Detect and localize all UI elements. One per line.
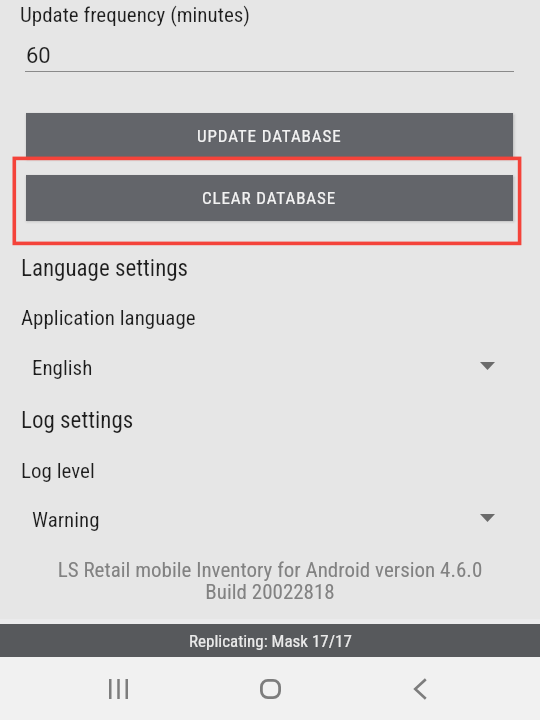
- staticText: UPDATE DATABASE: [197, 126, 342, 146]
- staticText: English: [32, 356, 93, 381]
- staticText: Language settings: [21, 255, 189, 282]
- staticText: LS Retail mobile Inventory for Android v…: [0, 558, 540, 605]
- button[interactable]: Recent apps: [78, 657, 158, 720]
- staticText: Log settings: [21, 407, 134, 434]
- button[interactable]: CLEAR DATABASE: [26, 175, 513, 221]
- button[interactable]: UPDATE DATABASE: [26, 113, 513, 159]
- button[interactable]: Warning: [0, 506, 540, 538]
- staticText: Replicating: Mask 17/17: [189, 631, 352, 651]
- staticText: Warning: [32, 508, 100, 533]
- button[interactable]: Home: [230, 657, 310, 720]
- staticText: CLEAR DATABASE: [202, 188, 337, 208]
- staticText: Application language: [21, 306, 196, 331]
- button[interactable]: Back: [380, 657, 460, 720]
- button[interactable]: English: [0, 354, 540, 386]
- staticText: 60: [26, 43, 51, 69]
- staticText: Log level: [21, 459, 95, 484]
- staticText: Update frequency (minutes): [20, 3, 251, 28]
